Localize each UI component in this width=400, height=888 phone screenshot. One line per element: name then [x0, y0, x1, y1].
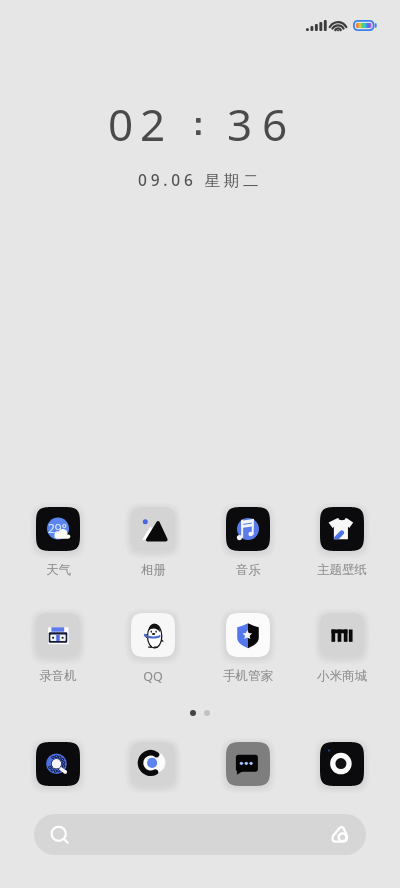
staticText: 天气 [46, 562, 71, 578]
button[interactable]: Messages [226, 742, 270, 786]
staticText: 录音机 [39, 668, 77, 684]
button[interactable]: 相册 [115, 507, 191, 578]
button[interactable]: 音乐 [210, 507, 286, 578]
staticText: 0 [108, 94, 134, 154]
staticText: 29° [48, 520, 67, 536]
button[interactable]: 小米商城 [304, 613, 380, 684]
staticText: 2 [140, 94, 166, 154]
staticText: 主题壁纸 [317, 562, 367, 578]
button[interactable]: Phone [36, 742, 80, 786]
staticText: 相册 [141, 562, 166, 578]
button[interactable]: 主题壁纸 [304, 507, 380, 578]
staticText: 手机管家 [223, 668, 273, 684]
button[interactable]: QQ [115, 613, 191, 685]
button[interactable]: Camera [320, 742, 364, 786]
staticText: 小米商城 [317, 668, 367, 684]
button[interactable]: Browser [131, 742, 175, 786]
staticText: 音乐 [236, 562, 261, 578]
button[interactable]: Search [34, 814, 366, 855]
staticText: 09.06 星期二 [138, 169, 263, 190]
staticText: QQ [143, 668, 163, 685]
staticText: 6 [262, 94, 288, 154]
button[interactable]: 29° [20, 507, 96, 578]
staticText: 3 [227, 94, 253, 154]
button[interactable]: 录音机 [20, 613, 96, 684]
button[interactable]: 手机管家 [210, 613, 286, 684]
